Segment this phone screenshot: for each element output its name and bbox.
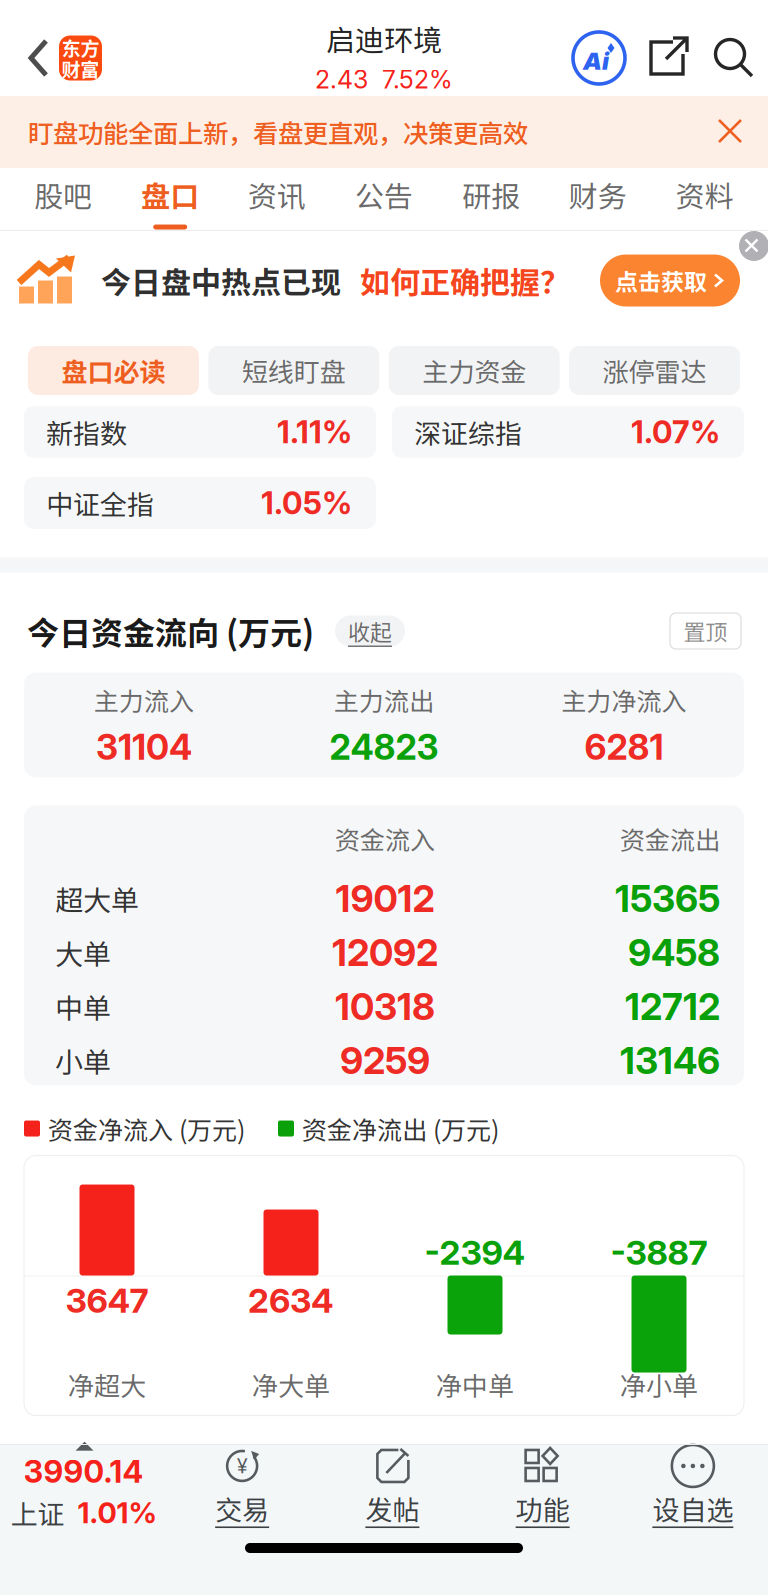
staticText: 1.07% bbox=[631, 413, 720, 451]
staticText: 资金流入 bbox=[335, 820, 435, 857]
button[interactable]: 资讯 bbox=[224, 168, 331, 230]
staticText: 15365 bbox=[615, 876, 720, 921]
staticText: 功能 bbox=[516, 1489, 570, 1528]
staticText: 净大单 bbox=[252, 1366, 330, 1403]
staticText: 1.05% bbox=[261, 484, 352, 522]
staticText: 主力流出 bbox=[334, 682, 434, 718]
staticText: 资金净流入 (万元) bbox=[48, 1110, 245, 1147]
staticText: 启迪环境 bbox=[326, 17, 442, 59]
staticText: 2634 bbox=[248, 1280, 334, 1321]
staticText: -3887 bbox=[610, 1232, 707, 1273]
button[interactable]: 东方财富 bbox=[59, 35, 102, 80]
staticText: 如何正确把握？ bbox=[360, 259, 570, 302]
button[interactable]: 盯盘功能全面上新，看盘更直观，决策更高效 bbox=[0, 96, 768, 168]
staticText: 财富 bbox=[61, 55, 99, 82]
button[interactable]: 盘口必读 bbox=[28, 346, 199, 395]
button[interactable]: 设自选 bbox=[618, 1444, 768, 1530]
staticText: 交易 bbox=[215, 1489, 269, 1528]
button[interactable]: 短线盯盘 bbox=[208, 346, 379, 395]
staticText: 12712 bbox=[625, 984, 720, 1029]
staticText: 深证综指 bbox=[414, 412, 522, 452]
staticText: 新指数 bbox=[46, 412, 127, 452]
staticText: 今日盘中热点已现 bbox=[101, 259, 341, 302]
button[interactable]: 今日盘中热点已现 bbox=[0, 231, 768, 330]
button[interactable]: AI 助手 bbox=[573, 32, 625, 84]
staticText: 1.01% bbox=[77, 1495, 156, 1530]
staticText: 净中单 bbox=[436, 1366, 514, 1403]
staticText: 3990.14 bbox=[23, 1453, 143, 1490]
button[interactable]: 资料 bbox=[651, 168, 758, 230]
staticText: 3647 bbox=[65, 1280, 148, 1321]
staticText: 涨停雷达 bbox=[603, 352, 707, 389]
staticText: 财务 bbox=[569, 173, 627, 215]
staticText: 10318 bbox=[335, 984, 435, 1029]
button[interactable]: 股吧 bbox=[10, 168, 117, 230]
staticText: 13146 bbox=[620, 1038, 720, 1083]
staticText: 6281 bbox=[584, 726, 663, 768]
staticText: 资料 bbox=[676, 173, 734, 215]
staticText: 中证全指 bbox=[46, 483, 154, 523]
staticText: 资金流出 bbox=[620, 820, 720, 857]
button[interactable]: 深证综指 bbox=[392, 406, 744, 458]
staticText: 大单 bbox=[55, 932, 111, 973]
staticText: 收起 bbox=[348, 615, 392, 647]
staticText: 研报 bbox=[462, 173, 520, 215]
staticText: 中单 bbox=[55, 986, 111, 1027]
staticText: 短线盯盘 bbox=[242, 352, 346, 389]
staticText: 9458 bbox=[628, 930, 720, 975]
button[interactable]: 中证全指 bbox=[24, 477, 376, 529]
staticText: ¥ bbox=[237, 1454, 248, 1478]
staticText: 资金净流出 (万元) bbox=[302, 1110, 499, 1147]
staticText: 东方 bbox=[61, 34, 99, 61]
staticText: 19012 bbox=[335, 876, 434, 921]
staticText: 小单 bbox=[55, 1040, 111, 1081]
button[interactable]: 主力资金 bbox=[389, 346, 560, 395]
staticText: 盯盘功能全面上新，看盘更直观，决策更高效 bbox=[28, 114, 528, 150]
staticText: 公告 bbox=[355, 173, 413, 215]
button[interactable]: 功能 bbox=[467, 1444, 618, 1530]
staticText: 发帖 bbox=[365, 1489, 419, 1528]
staticText: 主力流入 bbox=[94, 682, 194, 718]
button[interactable]: 涨停雷达 bbox=[569, 346, 740, 395]
staticText: 置顶 bbox=[683, 615, 727, 647]
button[interactable]: 3990.14 bbox=[0, 1444, 167, 1530]
staticText: 盘口 bbox=[141, 173, 199, 215]
staticText: 设自选 bbox=[652, 1489, 733, 1528]
staticText: 股吧 bbox=[34, 173, 92, 215]
button[interactable]: 财务 bbox=[544, 168, 651, 230]
button[interactable]: 收起 bbox=[335, 615, 405, 646]
staticText: 点击获取 bbox=[615, 264, 707, 297]
staticText: 超大单 bbox=[55, 878, 139, 919]
button[interactable]: 返回 bbox=[20, 30, 58, 86]
staticText: 2.43 7.52% bbox=[315, 64, 453, 95]
staticText: 今日资金流向 (万元) bbox=[27, 608, 314, 654]
button[interactable]: 置顶 bbox=[670, 613, 741, 649]
button[interactable]: 分享 bbox=[645, 32, 691, 84]
button[interactable]: 盘口 bbox=[117, 168, 224, 230]
staticText: 上证 bbox=[10, 1493, 64, 1532]
staticText: 24823 bbox=[329, 726, 438, 768]
staticText: 盘口必读 bbox=[61, 352, 165, 389]
staticText: 1.11% bbox=[277, 413, 352, 451]
staticText: -2394 bbox=[424, 1232, 525, 1273]
staticText: 9259 bbox=[340, 1038, 430, 1083]
button[interactable]: 关闭广告 bbox=[724, 231, 768, 275]
button[interactable]: 发帖 bbox=[317, 1444, 467, 1530]
staticText: 主力净流入 bbox=[561, 682, 686, 718]
staticText: 净小单 bbox=[620, 1366, 698, 1403]
button[interactable]: 公告 bbox=[331, 168, 437, 230]
staticText: 资讯 bbox=[248, 173, 306, 215]
staticText: Ai bbox=[583, 46, 609, 75]
staticText: 12092 bbox=[332, 930, 438, 975]
button[interactable]: 搜索 bbox=[709, 32, 757, 84]
button[interactable]: ¥ bbox=[167, 1444, 317, 1530]
button[interactable]: 研报 bbox=[437, 168, 544, 230]
staticText: 净超大 bbox=[68, 1366, 146, 1403]
button[interactable]: 新指数 bbox=[24, 406, 376, 458]
staticText: 主力资金 bbox=[422, 352, 526, 389]
staticText: 31104 bbox=[96, 726, 192, 768]
